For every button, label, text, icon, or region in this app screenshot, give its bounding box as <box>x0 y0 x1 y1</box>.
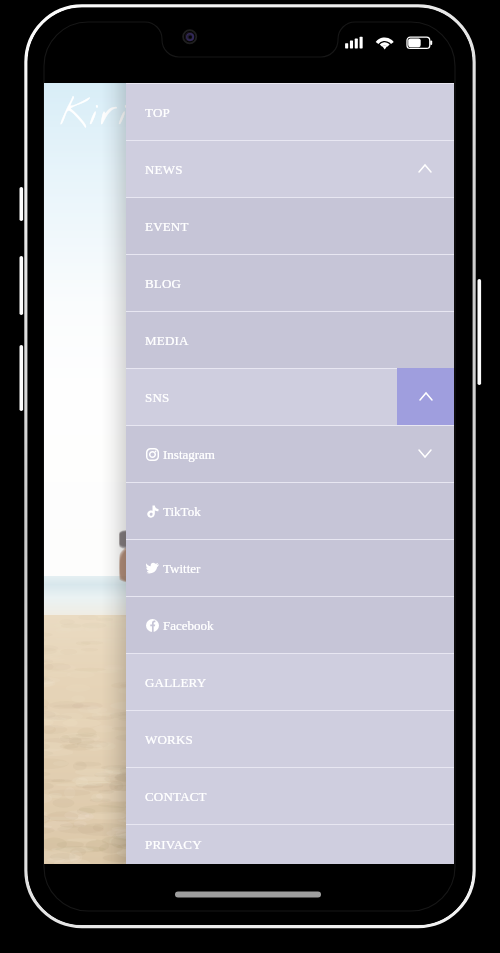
button[interactable]: TOP <box>126 83 454 140</box>
button[interactable]: EVENT <box>126 197 454 254</box>
button[interactable]: Facebook <box>126 596 454 653</box>
staticText: CONTACT <box>145 789 207 803</box>
staticText: GALLERY <box>145 675 207 689</box>
staticText: Facebook <box>163 618 214 632</box>
button[interactable]: CONTACT <box>126 767 454 824</box>
button[interactable]: Expand NEWS <box>396 140 454 197</box>
button[interactable]: Instagram <box>126 425 454 482</box>
staticText: Twitter <box>163 561 201 575</box>
button[interactable]: MEDIA <box>126 311 454 368</box>
staticText: SNS <box>145 390 170 404</box>
button[interactable]: BLOG <box>126 254 454 311</box>
button[interactable]: WORKS <box>126 710 454 767</box>
button[interactable]: SNS <box>126 368 454 425</box>
button[interactable]: Expand Instagram <box>396 425 454 482</box>
button[interactable]: Twitter <box>126 539 454 596</box>
button[interactable]: NEWS <box>126 140 454 197</box>
button[interactable]: GALLERY <box>126 653 454 710</box>
staticText: WORKS <box>145 732 193 746</box>
staticText: Kiria s <box>60 90 191 138</box>
staticText: Instagram <box>163 447 215 461</box>
staticText: TOP <box>145 105 170 119</box>
staticText: NEWS <box>145 162 183 176</box>
staticText: BLOG <box>145 276 182 290</box>
staticText: MEDIA <box>145 333 189 347</box>
staticText: PRIVACY <box>145 837 202 851</box>
staticText: EVENT <box>145 219 189 233</box>
button[interactable]: Expand SNS <box>397 368 454 425</box>
button[interactable]: PRIVACY <box>126 824 454 864</box>
staticText: TikTok <box>163 504 201 518</box>
button[interactable]: TikTok <box>126 482 454 539</box>
